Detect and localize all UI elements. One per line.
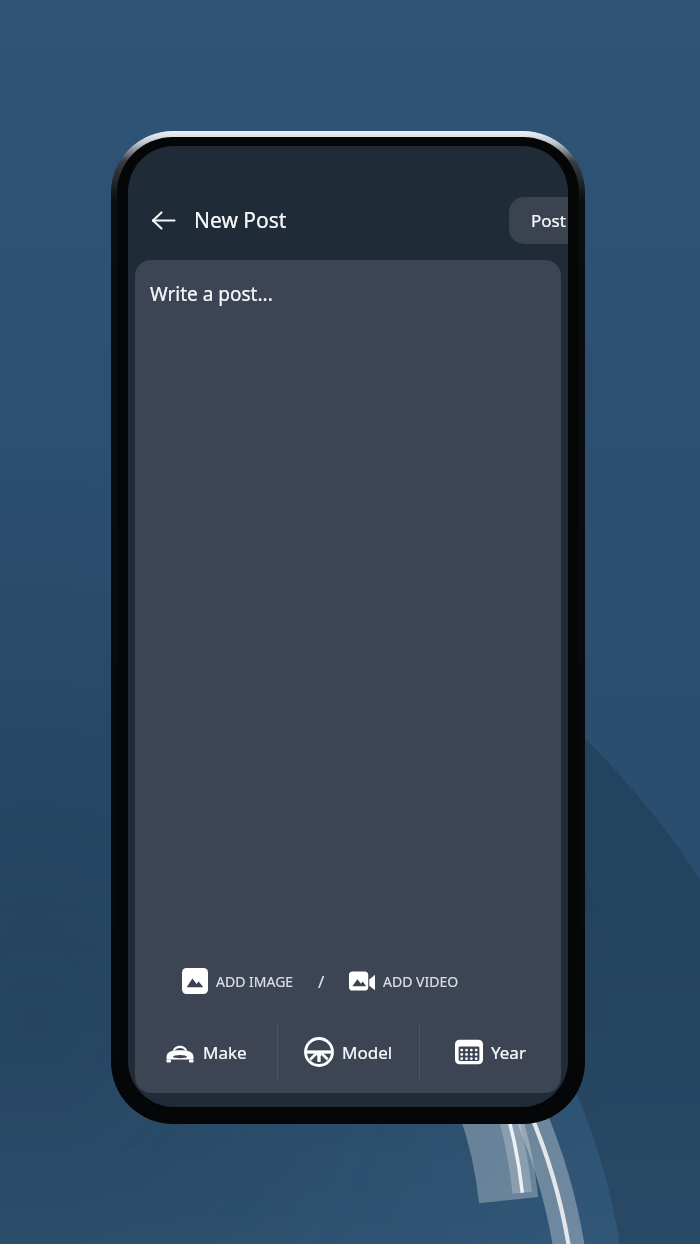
staticText: Make [203,1041,247,1064]
staticText: / [318,970,325,993]
button[interactable]: ADD IMAGE [182,964,294,998]
staticText: ADD IMAGE [216,972,294,991]
staticText: Write a post... [150,281,273,307]
staticText: ADD VIDEO [383,972,459,991]
button[interactable]: Year [420,1015,561,1089]
button[interactable]: Model [278,1015,419,1089]
staticText: Post [531,209,566,232]
button[interactable]: Back [140,197,186,243]
button[interactable]: Post [509,197,568,244]
staticText: New Post [194,206,287,235]
button[interactable]: Make [135,1015,277,1089]
staticText: Model [342,1041,393,1064]
button[interactable]: ADD VIDEO [349,964,459,998]
staticText: Year [491,1041,526,1064]
